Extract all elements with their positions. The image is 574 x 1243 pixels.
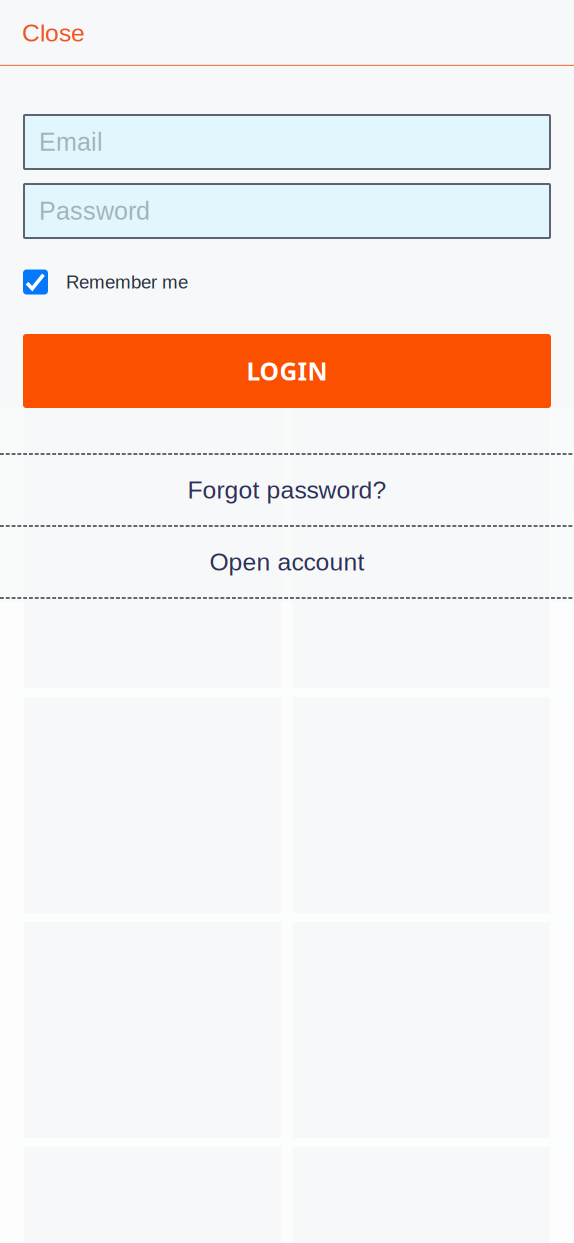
button[interactable]: LOGIN: [23, 334, 551, 408]
button[interactable]: Remember me: [23, 269, 551, 295]
staticText: Close: [22, 19, 85, 47]
staticText: Remember me: [66, 272, 188, 292]
button[interactable]: Open account: [0, 527, 574, 597]
staticText: Open account: [209, 548, 364, 576]
button[interactable]: Password: [23, 183, 551, 239]
staticText: LOGIN: [246, 354, 327, 388]
button[interactable]: Forgot password?: [0, 455, 574, 525]
staticText: Email: [39, 128, 103, 156]
button[interactable]: Close: [0, 5, 103, 61]
staticText: Forgot password?: [187, 476, 386, 504]
staticText: Password: [39, 197, 150, 225]
button[interactable]: Email: [23, 114, 551, 170]
